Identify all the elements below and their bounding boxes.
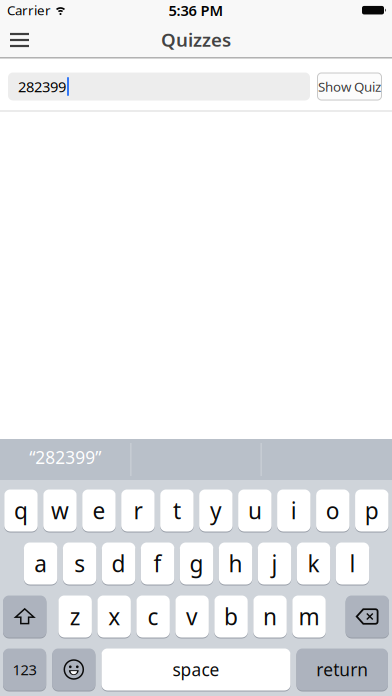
button[interactable]: Menu [0,32,29,47]
staticText: y [210,495,222,525]
button[interactable]: g [180,542,213,585]
button[interactable]: t [160,489,194,532]
staticText: p [365,495,379,525]
button[interactable]: s [63,542,96,585]
button[interactable]: w [43,489,77,532]
button[interactable]: v [175,595,209,638]
button[interactable]: o [316,489,350,532]
button[interactable]: p [355,489,389,532]
button[interactable]: Numbers [3,648,46,691]
staticText: space [172,658,219,681]
staticText: 5:36 PM [168,0,223,20]
staticText: e [92,495,105,525]
button[interactable]: “282399” [0,437,130,478]
button[interactable]: return [296,648,388,691]
staticText: c [148,601,159,631]
button[interactable]: y [199,489,233,532]
staticText: w [51,495,69,525]
staticText: Show Quiz [318,78,381,95]
staticText: j [271,548,277,578]
staticText: m [298,601,319,631]
staticText: t [173,495,181,525]
staticText: h [228,548,242,578]
button[interactable]: Emoji [52,648,95,691]
button[interactable]: k [297,542,330,585]
button[interactable]: m [292,595,326,638]
staticText: o [326,495,340,525]
staticText: u [248,495,262,525]
staticText: 123 [13,660,37,679]
staticText: i [291,495,297,525]
staticText: z [70,601,81,631]
staticText: d [112,548,126,578]
button[interactable]: n [253,595,287,638]
button[interactable]: h [219,542,252,585]
button[interactable]: e [82,489,116,532]
button[interactable]: Shift [3,595,46,638]
button[interactable]: d [102,542,135,585]
button[interactable]: q [4,489,38,532]
staticText: k [307,548,319,578]
button[interactable]: c [136,595,170,638]
button[interactable]: r [121,489,155,532]
button[interactable]: x [97,595,131,638]
button[interactable]: u [238,489,272,532]
staticText: Quizzes [161,27,231,52]
staticText: a [34,548,47,578]
staticText: q [14,495,28,525]
button[interactable]: a [24,542,57,585]
staticText: g [190,548,204,578]
staticText: n [263,601,277,631]
staticText: s [74,548,85,578]
staticText: x [108,601,120,631]
staticText: v [186,601,198,631]
button[interactable]: j [258,542,291,585]
button[interactable]: z [58,595,92,638]
staticText: r [133,495,142,525]
staticText: 282399 [18,77,66,96]
staticText: Carrier [7,1,51,19]
button[interactable]: f [141,542,174,585]
button[interactable]: Show Quiz [317,72,382,100]
button[interactable]: b [214,595,248,638]
button[interactable]: i [277,489,311,532]
staticText: “282399” [29,446,101,469]
button[interactable]: Delete [346,595,389,638]
staticText: return [316,658,368,681]
staticText: f [154,548,162,578]
staticText: l [349,548,355,578]
staticText: b [224,601,238,631]
button[interactable]: space [101,648,290,691]
button[interactable]: Quiz code text field [8,72,310,100]
button[interactable]: l [336,542,369,585]
